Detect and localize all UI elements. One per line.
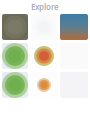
staticText: Explore — [31, 2, 59, 12]
